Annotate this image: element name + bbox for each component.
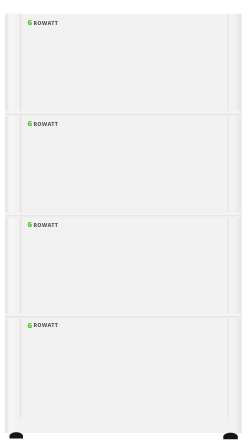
- button[interactable]: Growatt battery stack: [0, 0, 250, 445]
